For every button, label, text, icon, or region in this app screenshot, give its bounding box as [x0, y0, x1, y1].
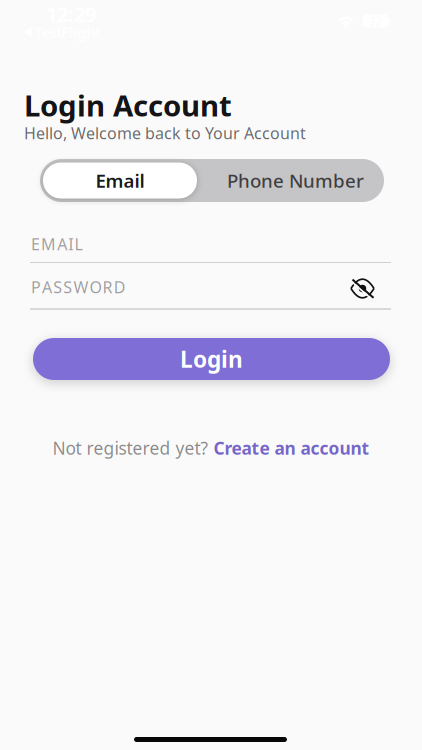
staticText: Hello, Welcome back to Your Account: [24, 122, 306, 144]
staticText: Not registered yet?: [52, 436, 208, 459]
staticText: R: [103, 276, 113, 298]
staticText: L: [74, 233, 82, 255]
button[interactable]: Email: [43, 162, 197, 198]
staticText: D: [114, 276, 126, 298]
staticText: O: [89, 276, 101, 298]
staticText: I: [68, 233, 73, 255]
staticText: Phone Number: [227, 168, 364, 193]
staticText: A: [57, 233, 67, 255]
staticText: P: [31, 276, 41, 298]
staticText: S: [63, 276, 72, 298]
button[interactable]: Password: [30, 265, 391, 309]
staticText: M: [41, 233, 56, 255]
staticText: E: [31, 233, 40, 255]
staticText: Email: [95, 168, 144, 193]
button[interactable]: Create an account: [213, 436, 369, 459]
button[interactable]: Phone Number: [197, 168, 384, 193]
button[interactable]: Email: [30, 226, 391, 263]
staticText: Create an account: [213, 436, 369, 459]
staticText: Login: [180, 344, 243, 374]
button[interactable]: Show password: [350, 279, 375, 298]
button[interactable]: Login: [33, 338, 390, 380]
staticText: W: [73, 276, 88, 298]
staticText: Login Account: [24, 85, 232, 124]
staticText: S: [53, 276, 62, 298]
staticText: A: [42, 276, 52, 298]
